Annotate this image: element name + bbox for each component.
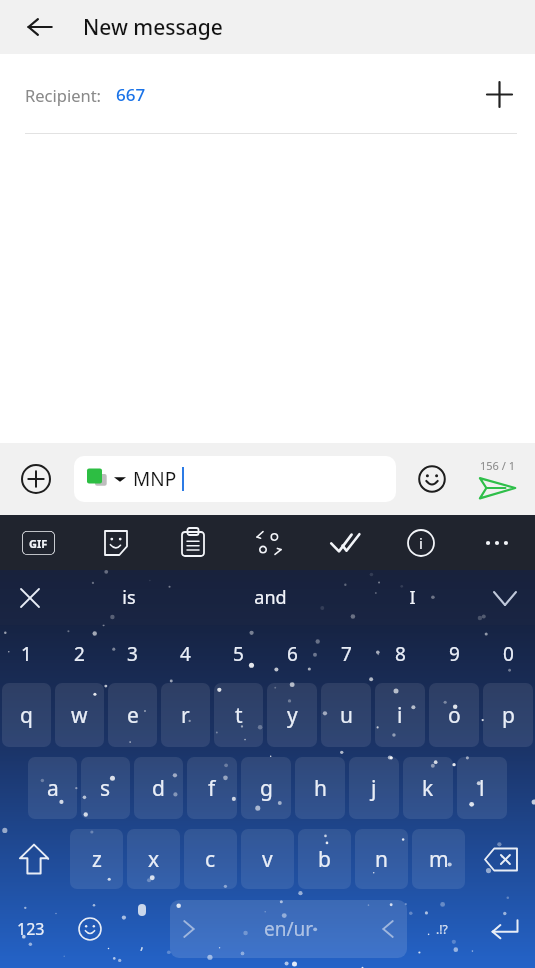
button[interactable]: i [375, 683, 425, 747]
staticText: en/ur [264, 916, 314, 942]
button[interactable]: Clipboard [154, 515, 231, 570]
button[interactable]: o [429, 683, 479, 747]
button[interactable]: b [298, 829, 351, 889]
button[interactable]: 1 [0, 625, 53, 683]
button[interactable]: u [321, 683, 371, 747]
staticText: s [100, 774, 111, 803]
staticText: 123 [17, 918, 45, 940]
button[interactable]: Voice input [118, 889, 166, 968]
staticText: 2 [74, 641, 85, 667]
staticText: 156 / 1 [480, 458, 515, 473]
button[interactable]: g [241, 757, 291, 819]
button[interactable]: n [355, 829, 408, 889]
button[interactable]: Attach [12, 455, 60, 503]
button[interactable]: Back [16, 3, 64, 51]
staticText: t [235, 701, 243, 730]
button[interactable]: k [403, 757, 453, 819]
staticText: w [71, 701, 88, 730]
button[interactable]: and [199, 570, 341, 625]
staticText: and [254, 585, 287, 610]
button[interactable]: 5 [212, 625, 265, 683]
button[interactable]: 4 [159, 625, 212, 683]
staticText: l [479, 774, 485, 803]
staticText: b [318, 845, 331, 874]
staticText: 9 [449, 641, 460, 667]
staticText: e [127, 701, 139, 730]
staticText: z [92, 845, 102, 874]
button[interactable]: 2 [53, 625, 106, 683]
staticText: p [502, 701, 515, 730]
staticText: h [314, 774, 327, 803]
button[interactable]: Enter [473, 889, 535, 968]
button[interactable]: 7 [319, 625, 373, 683]
staticText: m [429, 845, 449, 874]
button[interactable]: 8 [373, 625, 427, 683]
button[interactable]: More [459, 515, 535, 570]
button[interactable]: Send [469, 458, 525, 501]
button[interactable]: .!? [411, 889, 473, 968]
button[interactable]: s [81, 757, 130, 819]
staticText: I [409, 585, 416, 610]
button[interactable]: Emoji [409, 456, 455, 502]
button[interactable]: z [70, 829, 123, 889]
button[interactable]: c [184, 829, 237, 889]
staticText: k [422, 774, 434, 803]
button[interactable]: x [127, 829, 180, 889]
button[interactable]: Shift [0, 829, 68, 889]
staticText: Recipient: [25, 84, 102, 106]
button[interactable]: l [457, 757, 507, 819]
staticText: New message [83, 13, 223, 42]
button[interactable]: 3 [106, 625, 159, 683]
staticText: v [262, 845, 273, 874]
button[interactable]: 6 [265, 625, 319, 683]
button[interactable]: q [2, 683, 51, 747]
button[interactable]: m [412, 829, 465, 889]
staticText: , [140, 934, 144, 953]
button[interactable]: d [134, 757, 183, 819]
button[interactable]: t [214, 683, 263, 747]
button[interactable]: GIF [0, 515, 77, 570]
staticText: i [397, 701, 403, 730]
button[interactable]: Sticker [77, 515, 154, 570]
button[interactable]: r [161, 683, 210, 747]
staticText: o [448, 701, 461, 730]
button[interactable]: w [55, 683, 104, 747]
button[interactable]: h [295, 757, 345, 819]
staticText: f [208, 774, 216, 803]
staticText: .!? [436, 921, 448, 937]
button[interactable]: I [341, 570, 483, 625]
button[interactable]: Info [383, 515, 459, 570]
staticText: d [152, 774, 165, 803]
staticText: 7 [341, 641, 352, 667]
button[interactable]: p [483, 683, 533, 747]
staticText: a [47, 774, 59, 803]
button[interactable]: 9 [427, 625, 481, 683]
staticText: 0 [503, 641, 514, 667]
staticText: q [20, 701, 33, 730]
staticText: g [260, 774, 273, 803]
staticText: 4 [180, 641, 191, 667]
staticText: GIF [29, 536, 48, 551]
button[interactable]: Add recipient [475, 70, 523, 118]
button[interactable]: Emoji keyboard [62, 889, 118, 968]
button[interactable]: 0 [481, 625, 535, 683]
button[interactable]: Hide keyboard [483, 576, 527, 620]
staticText: MNP [133, 466, 177, 492]
staticText: 5 [233, 641, 244, 667]
button[interactable]: a [28, 757, 77, 819]
button[interactable]: Translate [231, 515, 307, 570]
button[interactable]: en/ur [170, 900, 407, 958]
button[interactable]: j [349, 757, 399, 819]
button[interactable]: f [187, 757, 237, 819]
button[interactable]: y [267, 683, 317, 747]
button[interactable]: is [58, 570, 199, 625]
button[interactable]: Check [307, 515, 383, 570]
button[interactable]: e [108, 683, 157, 747]
staticText: j [371, 774, 377, 803]
button[interactable]: Close suggestions [8, 576, 52, 620]
button[interactable]: v [241, 829, 294, 889]
button[interactable]: MNP [74, 456, 396, 502]
button[interactable]: 123 [0, 889, 62, 968]
button[interactable]: Backspace [467, 829, 535, 889]
staticText: n [375, 845, 388, 874]
